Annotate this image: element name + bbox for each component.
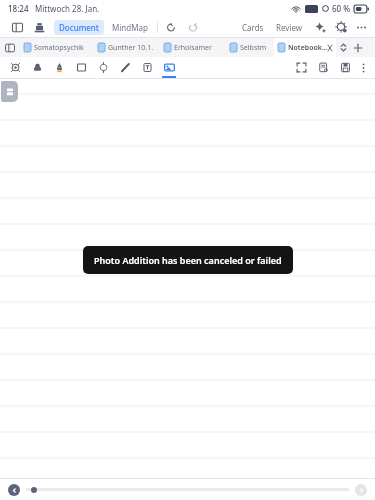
button[interactable]: Lasso select	[4, 57, 26, 78]
button[interactable]: Highlighter	[48, 57, 70, 78]
button[interactable]: Gunther 10.1.	[94, 38, 160, 57]
button[interactable]: Review	[273, 20, 306, 35]
button[interactable]: Redo	[185, 19, 201, 35]
button[interactable]: AI assistant	[312, 19, 328, 35]
staticText: Notebook...	[288, 43, 328, 53]
button[interactable]: Insert image	[158, 57, 180, 78]
staticText: Review	[276, 22, 303, 33]
staticText: Somatopsychik 7.1.	[34, 43, 90, 53]
staticText: Document	[59, 22, 99, 33]
staticText: MindMap	[112, 22, 148, 33]
button[interactable]: Page scrubber	[31, 487, 37, 493]
button[interactable]: New tab	[350, 38, 366, 57]
staticText: 18:24	[8, 3, 29, 14]
button[interactable]: Next page	[355, 484, 367, 496]
button[interactable]: Cards	[239, 20, 267, 35]
staticText: Erholsamer Schla	[174, 43, 222, 53]
button[interactable]: Hand tool	[26, 57, 48, 78]
button[interactable]: Selection	[92, 57, 114, 78]
button[interactable]: Undo	[163, 19, 179, 35]
button[interactable]: Pen	[114, 57, 136, 78]
button[interactable]: More options	[353, 19, 369, 35]
button[interactable]: Previous page	[8, 484, 20, 496]
button[interactable]: Erholsamer Schla	[160, 38, 226, 57]
button[interactable]: Library	[30, 18, 48, 36]
staticText: Selbstma	[240, 43, 270, 53]
button[interactable]: Page settings	[312, 57, 334, 78]
button[interactable]: More	[356, 61, 370, 75]
button[interactable]: Layers	[1, 81, 18, 102]
button[interactable]: Document	[54, 20, 104, 35]
button[interactable]: Toggle panel	[0, 38, 20, 57]
staticText: Gunther 10.1.	[108, 43, 154, 53]
button[interactable]: Somatopsychik 7.1.	[20, 38, 94, 57]
button[interactable]: Text box	[136, 57, 158, 78]
button[interactable]: Tab list	[336, 38, 350, 57]
button[interactable]: Expand	[290, 57, 312, 78]
button[interactable]: Sidebar	[8, 18, 26, 36]
button[interactable]: Search	[333, 19, 349, 35]
button[interactable]: MindMap	[108, 20, 152, 35]
staticText: 60 %	[332, 3, 351, 14]
button[interactable]: Notebook...	[274, 38, 336, 57]
button[interactable]: Shape	[70, 57, 92, 78]
staticText: Cards	[242, 22, 264, 33]
button[interactable]: Save	[334, 57, 356, 78]
staticText: Mittwoch 28. Jan.	[35, 3, 100, 14]
button[interactable]: Selbstma	[226, 38, 274, 57]
button[interactable]: Close tab	[328, 43, 332, 53]
staticText: Photo Addition has been canceled or fail…	[94, 254, 282, 266]
